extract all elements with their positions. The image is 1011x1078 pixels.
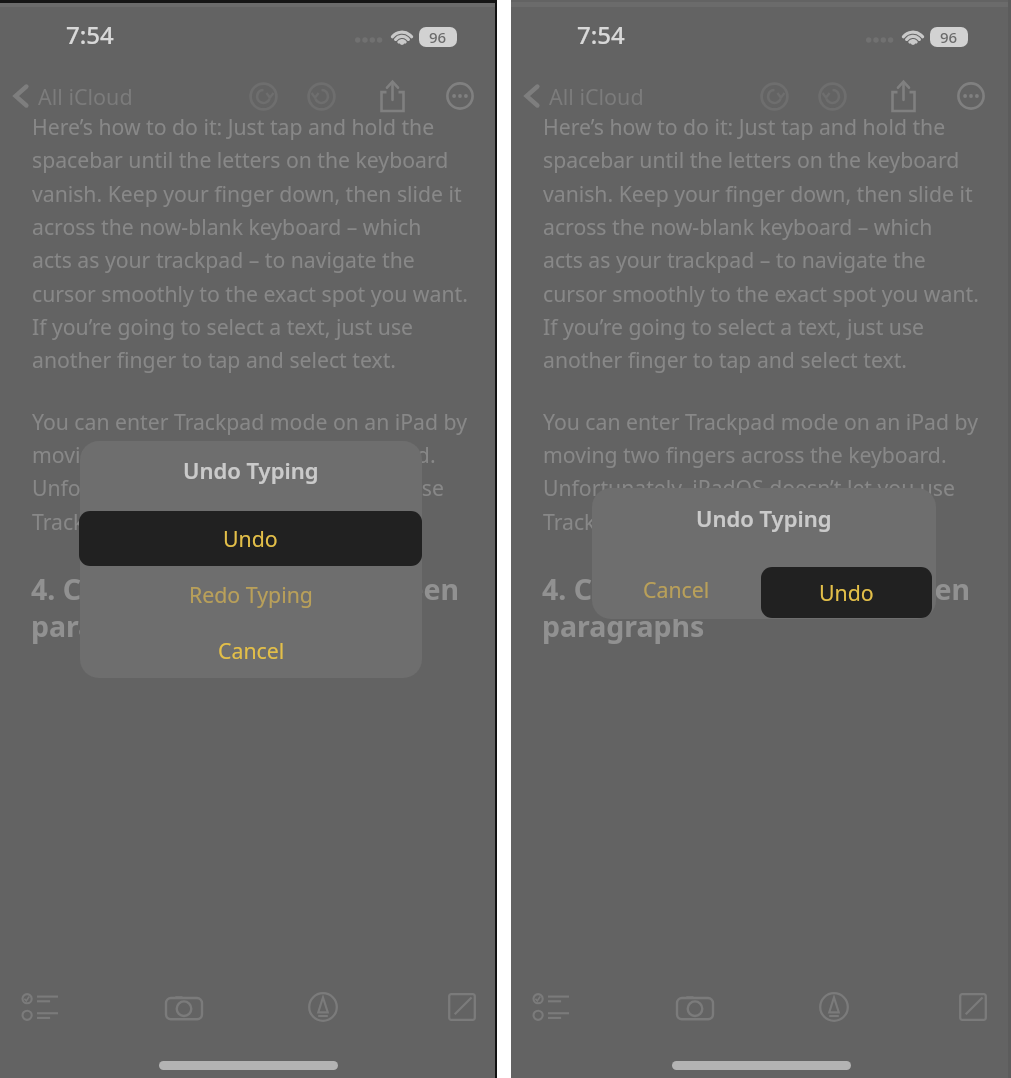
staticText: paragraphs bbox=[31, 607, 194, 646]
staticText: cursor smoothly to the exact spot you wa… bbox=[32, 279, 468, 308]
button[interactable]: Share bbox=[881, 76, 925, 116]
staticText: Trackpad mode in portrait orientation. bbox=[543, 507, 924, 536]
staticText: Here’s how to do it: Just tap and hold t… bbox=[543, 112, 946, 141]
staticText: vanish. Keep your finger down, then slid… bbox=[543, 179, 973, 208]
staticText: spacebar until the letters on the keyboa… bbox=[32, 145, 449, 174]
staticText: across the now-blank keyboard – which bbox=[543, 212, 933, 241]
button[interactable]: More options bbox=[949, 78, 993, 114]
staticText: Unfortunately, iPadOS doesn’t let you us… bbox=[32, 473, 444, 502]
staticText: Undo Typing bbox=[696, 503, 832, 533]
button[interactable]: Redo bbox=[299, 78, 343, 114]
button[interactable]: Undo bbox=[79, 511, 422, 566]
staticText: vanish. Keep your finger down, then slid… bbox=[32, 179, 462, 208]
staticText: Undo Typing bbox=[183, 455, 319, 485]
button[interactable]: All iCloud bbox=[10, 76, 133, 116]
staticText: 7:54 bbox=[577, 18, 625, 51]
staticText: acts as your trackpad – to navigate the bbox=[543, 245, 926, 274]
staticText: Cancel bbox=[643, 575, 710, 604]
button[interactable]: New note bbox=[950, 985, 996, 1029]
staticText: another finger to tap and select text. bbox=[543, 345, 907, 374]
button[interactable]: All iCloud bbox=[521, 76, 644, 116]
button[interactable]: Share bbox=[370, 76, 414, 116]
button[interactable]: Camera bbox=[668, 985, 722, 1029]
staticText: All iCloud bbox=[549, 82, 644, 111]
staticText: Cancel bbox=[218, 636, 285, 665]
button[interactable]: Checklist bbox=[12, 985, 68, 1029]
staticText: paragraphs bbox=[542, 607, 705, 646]
button[interactable]: Markup bbox=[300, 985, 346, 1029]
staticText: Undo bbox=[223, 524, 278, 553]
staticText: If you’re going to select a text, just u… bbox=[543, 312, 924, 341]
staticText: Undo bbox=[819, 578, 874, 607]
staticText: spacebar until the letters on the keyboa… bbox=[543, 145, 960, 174]
button[interactable]: Checklist bbox=[523, 985, 579, 1029]
staticText: 4. Create more space between bbox=[542, 570, 971, 609]
staticText: acts as your trackpad – to navigate the bbox=[32, 245, 415, 274]
staticText: All iCloud bbox=[38, 82, 133, 111]
staticText: You can enter Trackpad mode on an iPad b… bbox=[543, 407, 978, 436]
staticText: moving two fingers across the keyboard. bbox=[32, 440, 436, 469]
button[interactable]: New note bbox=[439, 985, 485, 1029]
staticText: 7:54 bbox=[66, 18, 114, 51]
button[interactable]: Undo bbox=[241, 78, 285, 114]
staticText: Here’s how to do it: Just tap and hold t… bbox=[32, 112, 435, 141]
staticText: You can enter Trackpad mode on an iPad b… bbox=[32, 407, 467, 436]
button[interactable]: Undo bbox=[752, 78, 796, 114]
staticText: Unfortunately, iPadOS doesn’t let you us… bbox=[543, 473, 955, 502]
button[interactable]: Undo bbox=[761, 567, 932, 618]
staticText: 96 bbox=[940, 27, 958, 47]
button[interactable]: More options bbox=[438, 78, 482, 114]
staticText: 96 bbox=[429, 27, 447, 47]
staticText: Redo Typing bbox=[189, 580, 313, 609]
staticText: cursor smoothly to the exact spot you wa… bbox=[543, 279, 979, 308]
button[interactable]: Cancel bbox=[80, 622, 422, 678]
button[interactable]: Redo bbox=[810, 78, 854, 114]
staticText: another finger to tap and select text. bbox=[32, 345, 396, 374]
button[interactable]: Markup bbox=[811, 985, 857, 1029]
staticText: Trackpad mode in portrait orientation. bbox=[32, 507, 413, 536]
button[interactable]: Cancel bbox=[592, 559, 761, 619]
staticText: moving two fingers across the keyboard. bbox=[543, 440, 947, 469]
button[interactable]: Camera bbox=[157, 985, 211, 1029]
button[interactable]: Redo Typing bbox=[80, 566, 422, 622]
staticText: 4. Create more space between bbox=[31, 570, 460, 609]
staticText: across the now-blank keyboard – which bbox=[32, 212, 422, 241]
staticText: If you’re going to select a text, just u… bbox=[32, 312, 413, 341]
